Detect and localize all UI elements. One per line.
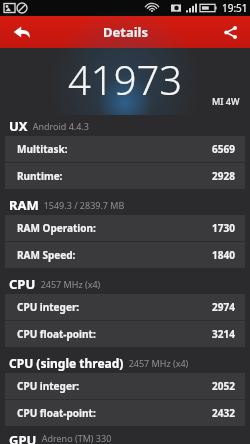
staticText: Adreno (TM) 330 [37,432,112,444]
button[interactable]: RAM Operation: [5,215,245,241]
staticText: 2974 [212,300,235,314]
staticText: Android 4.4.3 [28,120,89,132]
staticText: RAM Speed: [17,248,76,262]
button[interactable]: Runtime: [5,163,245,189]
staticText: 1730 [212,221,235,235]
button[interactable]: Share [210,16,250,48]
staticText: CPU float-point: [17,327,96,341]
button[interactable]: CPU integer: [5,294,245,320]
staticText: Runtime: [17,169,63,183]
staticText: 1549.3 / 2839.7 MB [39,199,125,211]
button[interactable]: CPU float-point: [5,400,245,426]
staticText: 6569 [212,142,235,156]
staticText: 3214 [212,327,235,341]
staticText: 2432 [212,406,235,420]
staticText: RAM [9,196,39,214]
staticText: CPU (single thread) [9,355,124,371]
staticText: CPU integer: [17,379,80,393]
staticText: MI 4W [212,95,240,107]
staticText: 19:51 [222,1,248,15]
staticText: CPU [9,275,36,293]
staticText: 2928 [212,169,235,183]
button[interactable]: CPU float-point: [5,321,245,347]
button[interactable]: RAM Speed: [5,242,245,268]
staticText: 2457 MHz (x4) [36,278,101,290]
button[interactable]: Back [0,16,44,48]
staticText: CPU float-point: [17,406,96,420]
staticText: 2052 [212,379,235,393]
staticText: 2457 MHz (x4) [124,357,189,369]
staticText: 1840 [212,248,235,262]
staticText: UX [9,117,28,135]
staticText: CPU integer: [17,300,80,314]
staticText: GPU [9,431,37,444]
staticText: RAM Operation: [17,221,96,235]
staticText: Details [103,23,148,41]
staticText: 41973 [68,52,183,106]
button[interactable]: Multitask: [5,136,245,162]
button[interactable]: CPU integer: [5,373,245,399]
staticText: Multitask: [17,142,68,156]
